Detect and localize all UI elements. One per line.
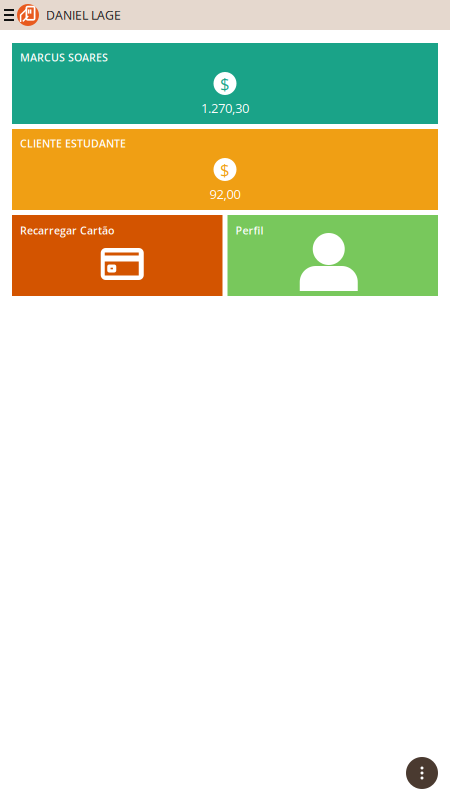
staticText: 1.270,30 [201, 99, 249, 117]
button[interactable]: More options [406, 757, 438, 789]
button[interactable]: $ [12, 43, 438, 124]
staticText: Perfil [235, 223, 263, 237]
button[interactable]: Perfil [227, 215, 438, 296]
staticText: 92,00 [209, 185, 240, 203]
staticText: $ [220, 72, 230, 95]
button[interactable]: Recarregar Cartão [12, 215, 222, 296]
staticText: CLIENTE ESTUDANTE [20, 136, 126, 150]
button[interactable]: Menu [0, 0, 17, 30]
staticText: Recarregar Cartão [20, 223, 115, 237]
staticText: MARCUS SOARES [20, 50, 108, 64]
staticText: DANIEL LAGE [46, 7, 121, 23]
button[interactable]: $ [12, 129, 438, 210]
staticText: $ [220, 158, 230, 181]
